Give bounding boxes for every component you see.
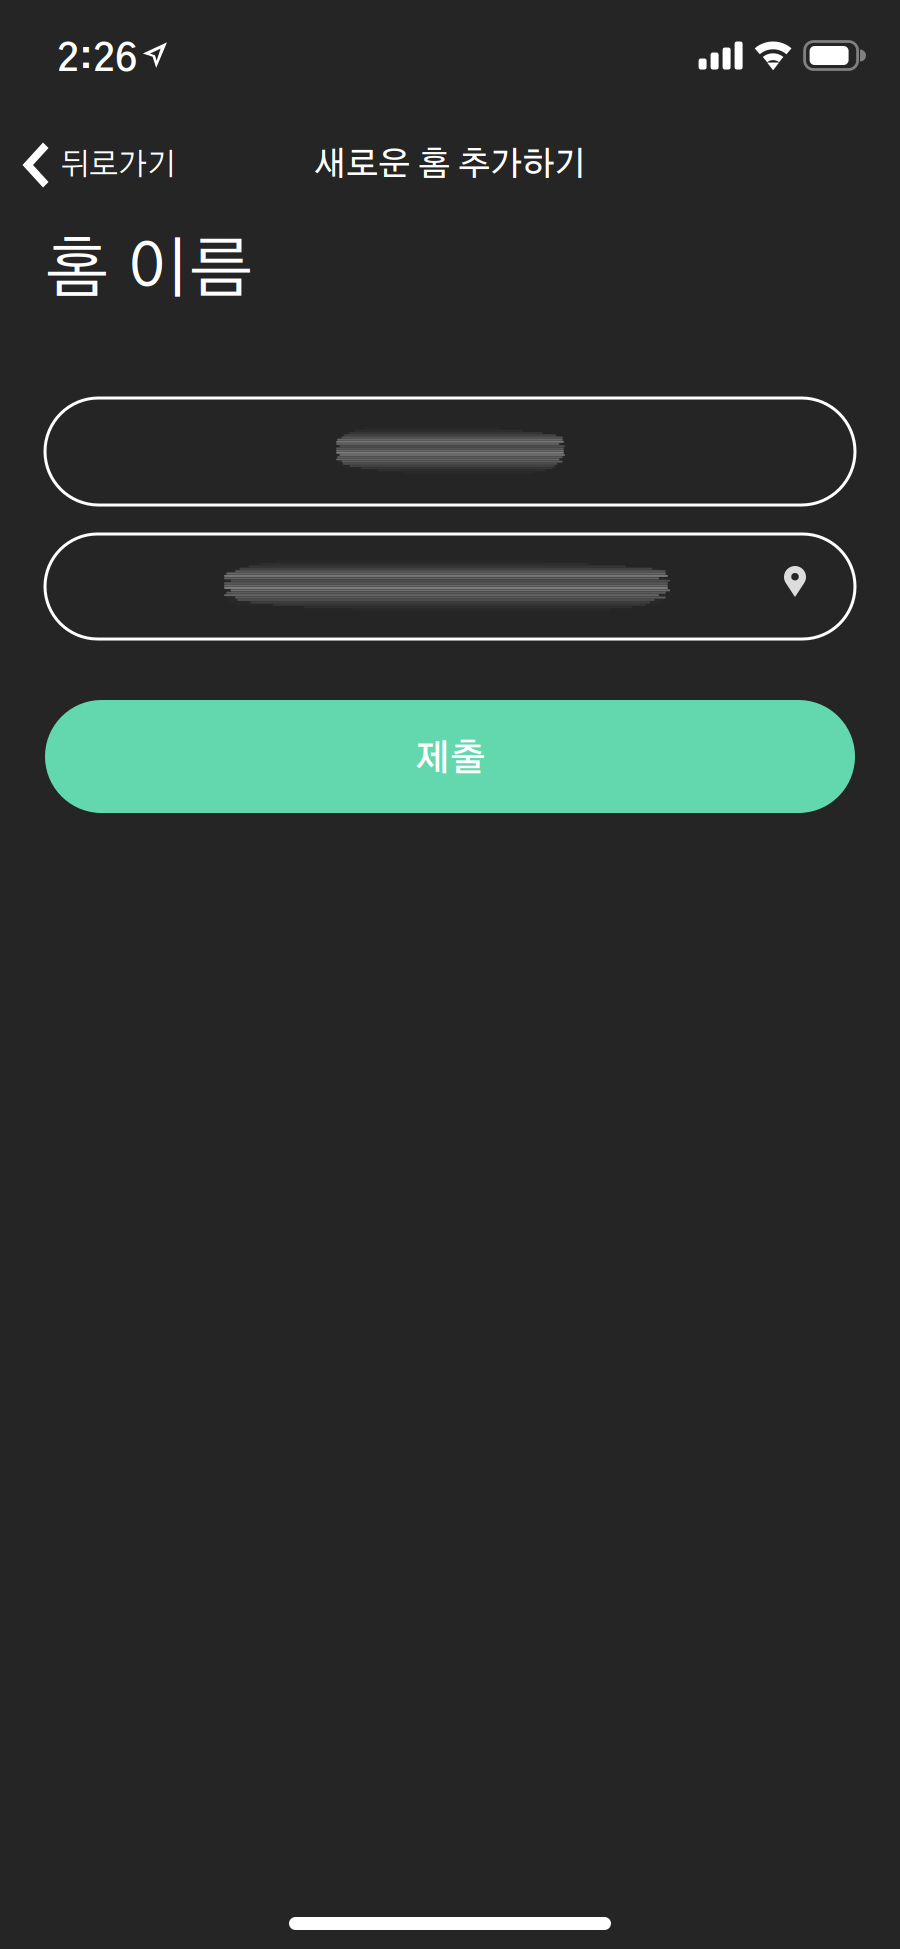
staticText: 2:26 — [57, 40, 137, 79]
staticText: 홈 이름 — [45, 238, 253, 304]
button[interactable]: 뒤로가기 — [0, 130, 192, 199]
staticText: 뒤로가기 — [60, 150, 176, 180]
staticText: 새로운 홈 추가하기 — [314, 148, 586, 182]
staticText: 제출 — [415, 741, 485, 777]
button[interactable]: 제출 — [45, 700, 855, 813]
button[interactable]: Use current location — [735, 534, 855, 639]
